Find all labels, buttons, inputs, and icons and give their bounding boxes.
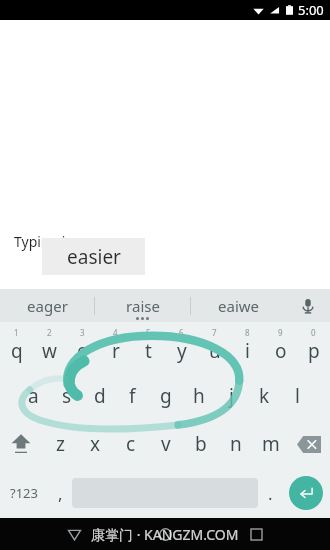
button[interactable]: Shift	[0, 420, 42, 468]
staticText: j	[229, 383, 234, 409]
staticText: w	[42, 338, 57, 364]
button[interactable]: raise	[95, 289, 190, 322]
staticText: n	[230, 431, 242, 457]
staticText: 3	[80, 327, 85, 338]
button[interactable]: v	[148, 420, 183, 468]
staticText: ,	[58, 482, 63, 505]
button[interactable]: n	[218, 420, 253, 468]
staticText: d	[94, 383, 106, 409]
staticText: u	[209, 338, 221, 364]
staticText: 5	[146, 327, 151, 338]
button[interactable]: Voice input	[286, 289, 330, 322]
button[interactable]: ?123	[0, 468, 48, 518]
button[interactable]: s	[50, 372, 83, 420]
staticText: eaiwe	[218, 296, 259, 316]
button[interactable]: Recent apps	[239, 518, 273, 550]
button[interactable]: k	[248, 372, 281, 420]
staticText: i	[245, 338, 250, 364]
staticText: y	[177, 338, 187, 364]
button[interactable]: 5	[132, 322, 165, 372]
staticText: o	[275, 338, 287, 364]
staticText: 0	[311, 327, 316, 338]
button[interactable]: x	[78, 420, 113, 468]
staticText: s	[62, 383, 72, 409]
button[interactable]: f	[116, 372, 149, 420]
staticText: k	[259, 383, 270, 409]
button[interactable]: d	[83, 372, 116, 420]
staticText: v	[161, 431, 171, 457]
button[interactable]: 8	[231, 322, 264, 372]
button[interactable]: 6	[165, 322, 198, 372]
button[interactable]: eager	[0, 289, 94, 322]
staticText: 4	[113, 327, 118, 338]
staticText: 9	[278, 327, 283, 338]
staticText: 6	[179, 327, 184, 338]
button[interactable]: 9	[264, 322, 297, 372]
staticText: 8	[245, 327, 250, 338]
staticText: eager	[27, 296, 68, 316]
button[interactable]: 0	[297, 322, 330, 372]
button[interactable]: h	[182, 372, 215, 420]
staticText: .	[268, 482, 273, 505]
staticText: l	[295, 383, 300, 409]
button[interactable]: b	[183, 420, 218, 468]
button[interactable]: 4	[99, 322, 132, 372]
staticText: x	[90, 431, 101, 457]
button[interactable]: a	[16, 372, 50, 420]
staticText: easier	[67, 244, 121, 270]
staticText: r	[112, 338, 120, 364]
button[interactable]: Home	[148, 518, 182, 550]
staticText: q	[11, 338, 23, 364]
staticText: 1	[14, 327, 19, 338]
button[interactable]: 2	[33, 322, 66, 372]
staticText: raise	[126, 296, 160, 316]
button[interactable]: eaiwe	[191, 289, 286, 322]
staticText: a	[28, 383, 39, 409]
staticText: p	[308, 338, 320, 364]
button[interactable]: g	[149, 372, 182, 420]
staticText: 5:00	[298, 1, 324, 19]
staticText: c	[126, 431, 136, 457]
staticText: 2	[47, 327, 52, 338]
button[interactable]: z	[42, 420, 78, 468]
button[interactable]: c	[113, 420, 148, 468]
staticText: h	[193, 383, 205, 409]
button[interactable]: Enter	[289, 476, 323, 510]
button[interactable]: ,	[48, 468, 72, 518]
staticText: m	[262, 431, 280, 457]
button[interactable]: Back	[57, 518, 91, 550]
staticText: z	[56, 431, 65, 457]
button[interactable]: 3	[66, 322, 99, 372]
staticText: 7	[212, 327, 217, 338]
staticText: e	[77, 338, 88, 364]
button[interactable]: 1	[0, 322, 33, 372]
button[interactable]: m	[253, 420, 288, 468]
staticText: ?123	[10, 484, 38, 502]
button[interactable]: 7	[198, 322, 231, 372]
staticText: g	[160, 383, 172, 409]
button[interactable]: l	[281, 372, 314, 420]
button[interactable]: .	[258, 468, 282, 518]
staticText: 康掌门 · KANGZM.COM	[91, 525, 239, 544]
button[interactable]: Backspace	[288, 420, 330, 468]
staticText: t	[145, 338, 152, 364]
staticText: f	[129, 383, 136, 409]
button[interactable]: j	[215, 372, 248, 420]
staticText: Typing is	[14, 232, 73, 251]
staticText: b	[195, 431, 207, 457]
